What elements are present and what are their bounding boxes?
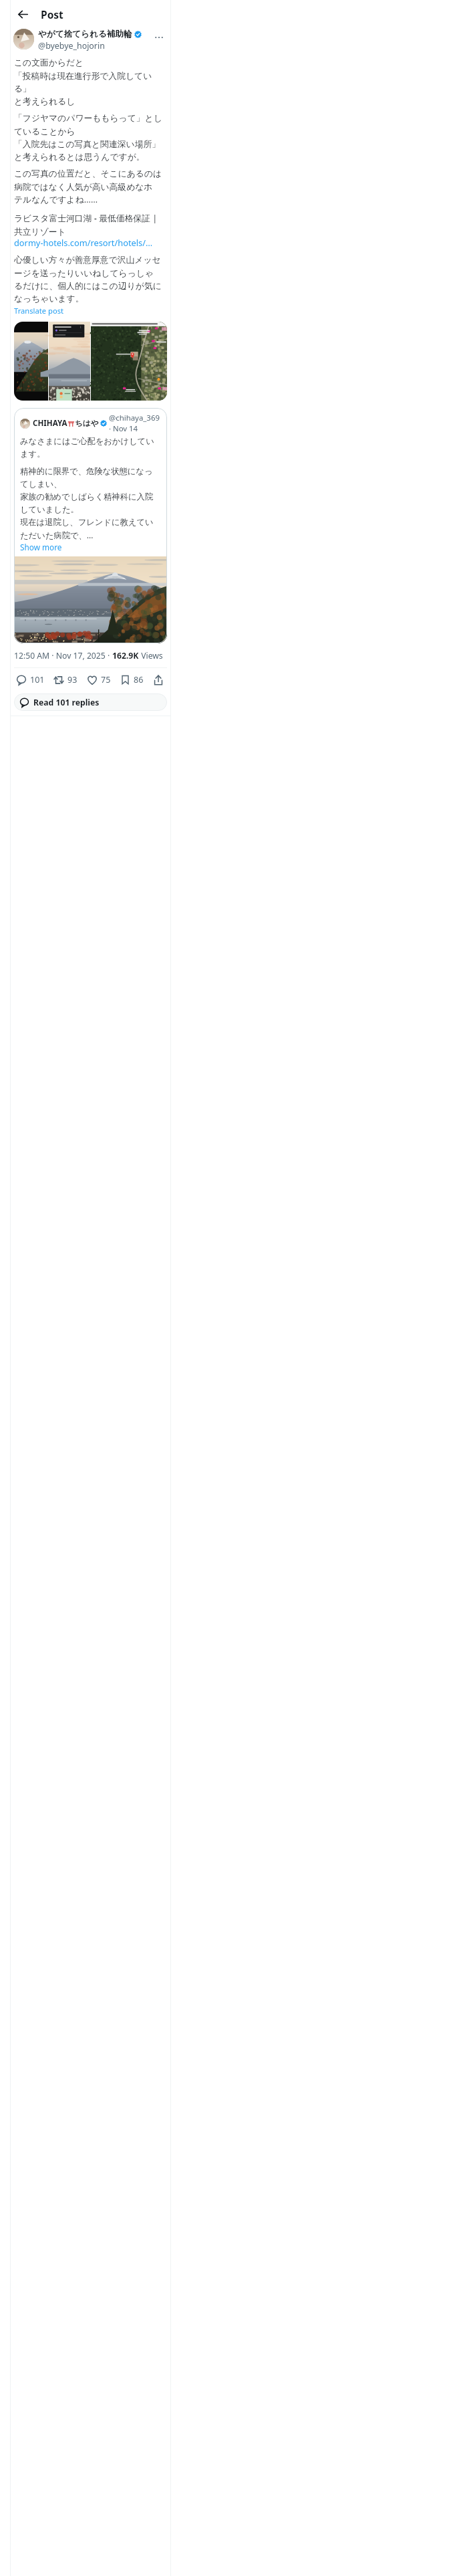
button[interactable]: 12:50 AM · Nov 17, 2025 · [14,650,163,661]
button[interactable]: Repost [52,671,79,688]
button[interactable]: Like [86,671,112,688]
staticText: @chihaya_369 · Nov 14 [109,413,161,434]
staticText: この文面からだと 「投稿時は現在進行形で入院している」 と考えられるし [14,58,167,106]
button[interactable]: やがて捨てられる補助輪 [11,28,170,51]
button[interactable]: Read 101 replies [14,693,167,711]
button[interactable]: Translate post [14,306,64,316]
staticText: Post [41,7,63,21]
button[interactable]: Share [152,672,165,688]
staticText: ラビスタ富士河口湖 - 最低価格保証 | 共立リゾート [14,212,167,237]
staticText: 75 [101,674,111,685]
staticText: Read 101 replies [33,697,100,708]
staticText: 101 [30,674,45,685]
staticText: 心優しい方々が善意厚意で沢山メッセージを送ったりいいねしてらっしゃ るだけに、個… [14,255,167,304]
staticText: 93 [67,674,78,685]
button[interactable]: Back [12,3,33,25]
button[interactable]: Reply [15,671,46,688]
staticText: @byebye_hojorin [38,40,105,51]
staticText: この写真の位置だと、そこにあるのは病院ではなく人気が高い高級めなホ テルなんです… [14,169,167,205]
button[interactable]: ラビスタ富士河口湖 - 最低価格保証 | 共立リゾート [14,212,167,248]
staticText: Views [139,650,163,661]
button[interactable]: Bookmark [119,671,145,688]
staticText: 86 [134,674,144,685]
staticText: Show more [20,542,62,552]
staticText: ちはや [75,419,99,429]
staticText: 精神的に限界で、危険な状態になってしまい、 家族の勧めでしばらく精神科に入院して… [20,466,161,541]
button[interactable]: More options [150,29,168,46]
staticText: dormy-hotels.com/resort/hotels/… [14,237,153,248]
staticText: 12:50 AM · Nov 17, 2025 · [14,650,112,661]
staticText: CHIHAYA [33,418,67,429]
staticText: Translate post [14,306,64,316]
staticText: 162.9K [112,650,139,661]
staticText: みなさまにはご心配をおかけしています。 [20,436,161,459]
staticText: やがて捨てられる補助輪 [38,29,132,39]
button[interactable]: Show more [20,542,62,552]
staticText: 「フジヤマのパワーももらって」としていることから 「入院先はこの写真と関連深い場… [14,113,167,162]
button[interactable] [14,322,167,401]
button[interactable]: CHIHAYA [14,408,167,643]
